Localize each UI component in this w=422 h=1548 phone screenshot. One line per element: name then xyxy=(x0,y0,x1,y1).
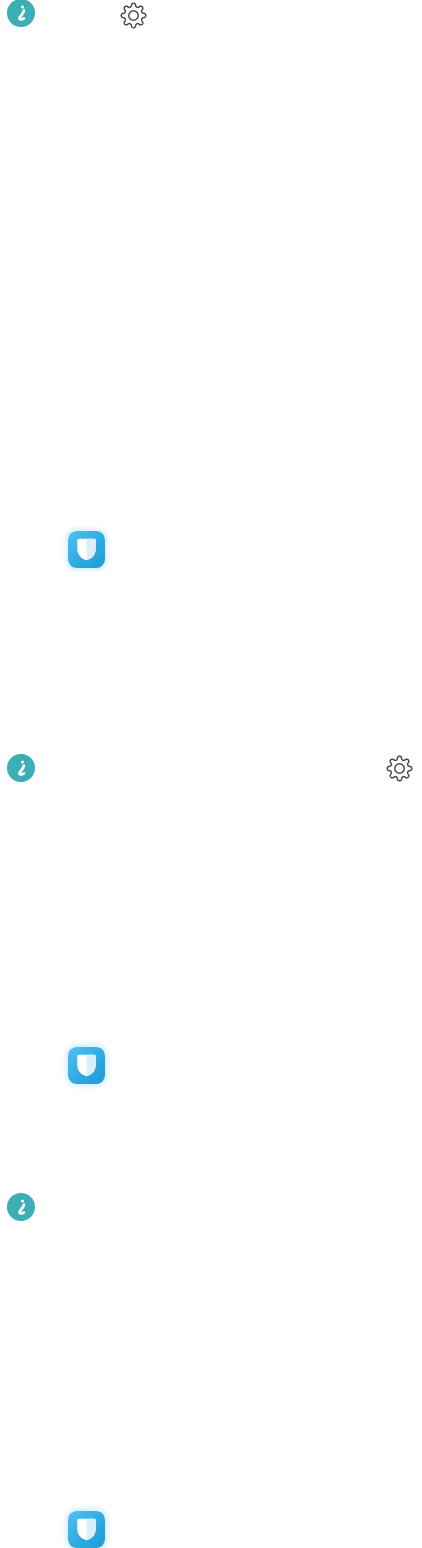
button[interactable]: Information xyxy=(7,0,35,27)
button[interactable]: Settings xyxy=(120,2,147,29)
button[interactable]: Security app xyxy=(68,531,105,568)
button[interactable]: Information xyxy=(7,1193,35,1221)
button[interactable]: Settings xyxy=(386,755,413,782)
button[interactable]: Information xyxy=(7,754,35,782)
button[interactable]: Security app xyxy=(68,1047,105,1084)
button[interactable]: Security app xyxy=(68,1511,105,1548)
